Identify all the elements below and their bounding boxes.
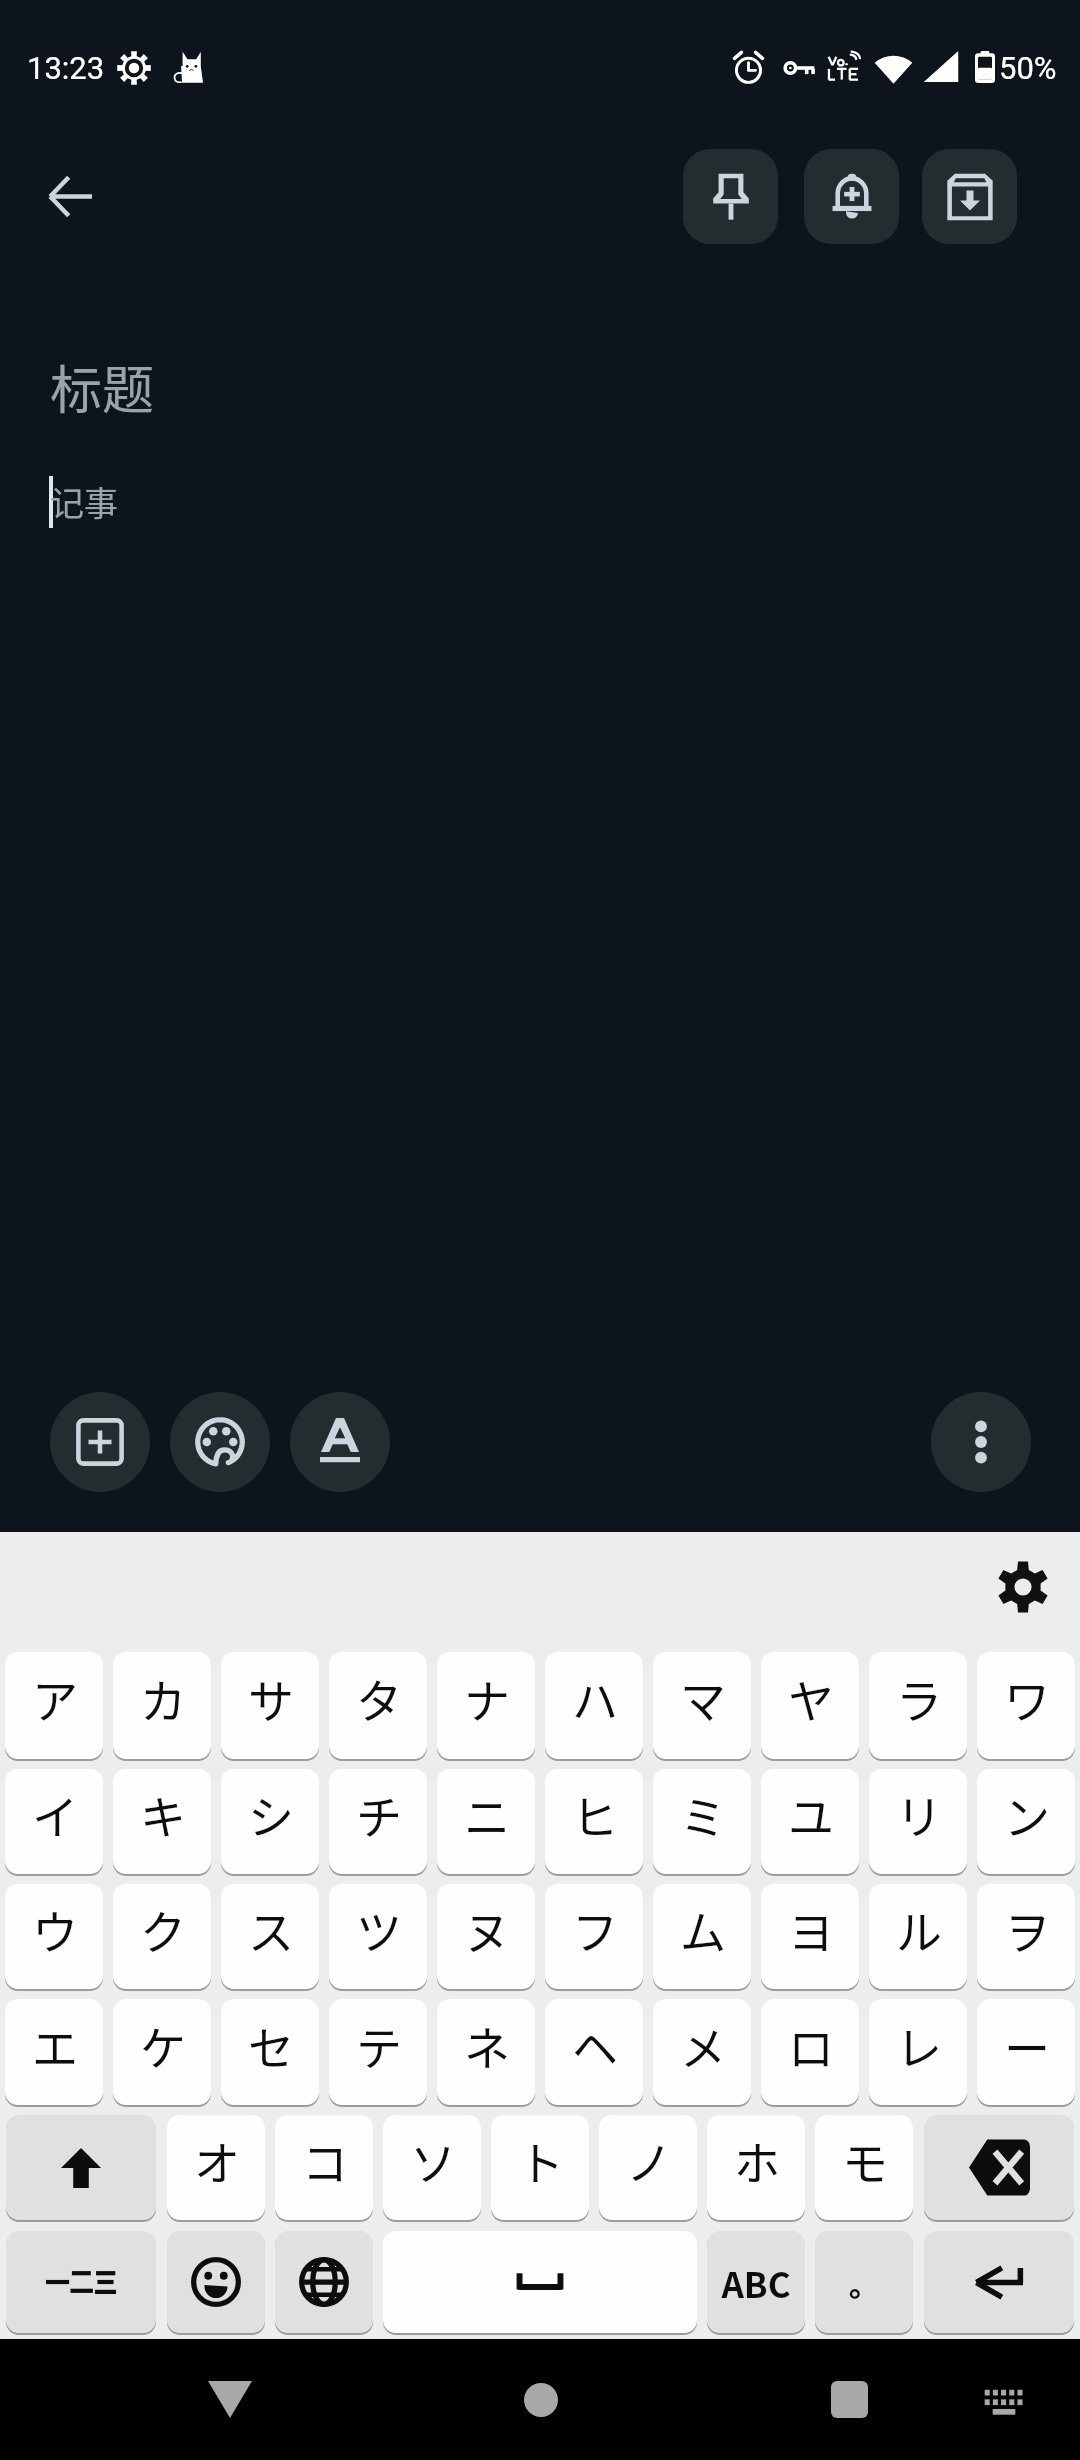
- button[interactable]: ン: [977, 1769, 1075, 1874]
- staticText: ノ: [626, 2127, 672, 2194]
- button[interactable]: Enter: [924, 2231, 1074, 2333]
- staticText: ヤ: [788, 1665, 834, 1732]
- staticText: モ: [842, 2127, 888, 2194]
- button[interactable]: マ: [653, 1652, 751, 1759]
- button[interactable]: ヒ: [545, 1769, 643, 1874]
- button[interactable]: Space: [383, 2231, 697, 2333]
- button[interactable]: オ: [167, 2115, 265, 2220]
- button[interactable]: モ: [815, 2115, 913, 2220]
- button[interactable]: ソ: [383, 2115, 481, 2220]
- button[interactable]: テ: [329, 1999, 427, 2105]
- button[interactable]: More options: [931, 1392, 1031, 1492]
- staticText: ト: [518, 2127, 564, 2194]
- button[interactable]: ア: [5, 1652, 103, 1759]
- button[interactable]: ハ: [545, 1652, 643, 1759]
- button[interactable]: ホ: [707, 2115, 805, 2220]
- button[interactable]: フ: [545, 1884, 643, 1989]
- button[interactable]: タ: [329, 1652, 427, 1759]
- staticText: イ: [32, 1781, 78, 1848]
- staticText: オ: [194, 2127, 240, 2194]
- button[interactable]: Reminder: [804, 149, 899, 244]
- staticText: ユ: [788, 1781, 834, 1848]
- button[interactable]: ヘ: [545, 1999, 643, 2105]
- staticText: サ: [248, 1665, 294, 1732]
- button[interactable]: ヌ: [437, 1884, 535, 1989]
- staticText: ミ: [680, 1781, 726, 1848]
- button[interactable]: ラ: [869, 1652, 967, 1759]
- staticText: マ: [680, 1665, 726, 1732]
- button[interactable]: ケ: [113, 1999, 211, 2105]
- button[interactable]: Format: [290, 1392, 390, 1492]
- button[interactable]: ル: [869, 1884, 967, 1989]
- staticText: ワ: [1004, 1665, 1050, 1732]
- staticText: レ: [896, 2012, 942, 2079]
- button[interactable]: Backspace: [924, 2115, 1074, 2220]
- button[interactable]: レ: [869, 1999, 967, 2105]
- staticText: ス: [248, 1896, 294, 1963]
- button[interactable]: ABC: [707, 2231, 805, 2333]
- staticText: ル: [896, 1896, 942, 1963]
- button[interactable]: 。: [815, 2231, 913, 2333]
- button[interactable]: カ: [113, 1652, 211, 1759]
- staticText: ハ: [572, 1665, 618, 1732]
- button[interactable]: Symbols: [6, 2231, 156, 2333]
- button[interactable]: ニ: [437, 1769, 535, 1874]
- button[interactable]: Back: [175, 2339, 285, 2460]
- button[interactable]: ヲ: [977, 1884, 1075, 1989]
- button[interactable]: Home: [486, 2339, 596, 2460]
- staticText: ネ: [464, 2012, 510, 2079]
- button[interactable]: ナ: [437, 1652, 535, 1759]
- button[interactable]: コ: [275, 2115, 373, 2220]
- button[interactable]: 标题: [46, 330, 1036, 426]
- staticText: ヌ: [464, 1896, 510, 1963]
- button[interactable]: ユ: [761, 1769, 859, 1874]
- button[interactable]: Add: [50, 1392, 150, 1492]
- button[interactable]: ク: [113, 1884, 211, 1989]
- button[interactable]: ワ: [977, 1652, 1075, 1759]
- button[interactable]: リ: [869, 1769, 967, 1874]
- button[interactable]: Pin: [683, 149, 778, 244]
- button[interactable]: ロ: [761, 1999, 859, 2105]
- button[interactable]: ウ: [5, 1884, 103, 1989]
- button[interactable]: キ: [113, 1769, 211, 1874]
- staticText: ABC: [721, 2257, 791, 2308]
- button[interactable]: イ: [5, 1769, 103, 1874]
- button[interactable]: ヨ: [761, 1884, 859, 1989]
- button[interactable]: ミ: [653, 1769, 751, 1874]
- button[interactable]: Emoji: [167, 2231, 265, 2333]
- staticText: 50%: [999, 50, 1057, 86]
- button[interactable]: Archive: [922, 149, 1017, 244]
- button[interactable]: 记事: [46, 462, 1036, 1362]
- button[interactable]: Keyboard settings: [987, 1551, 1059, 1623]
- staticText: ツ: [356, 1896, 402, 1963]
- button[interactable]: チ: [329, 1769, 427, 1874]
- button[interactable]: Colour: [170, 1392, 270, 1492]
- button[interactable]: エ: [5, 1999, 103, 2105]
- staticText: ク: [140, 1896, 186, 1963]
- staticText: ー: [1004, 2012, 1050, 2079]
- button[interactable]: シ: [221, 1769, 319, 1874]
- button[interactable]: ト: [491, 2115, 589, 2220]
- staticText: チ: [356, 1781, 402, 1848]
- button[interactable]: サ: [221, 1652, 319, 1759]
- button[interactable]: Shift: [6, 2115, 156, 2220]
- button[interactable]: セ: [221, 1999, 319, 2105]
- button[interactable]: ノ: [599, 2115, 697, 2220]
- staticText: ヒ: [572, 1781, 618, 1848]
- button[interactable]: メ: [653, 1999, 751, 2105]
- button[interactable]: Back: [22, 148, 118, 244]
- button[interactable]: ス: [221, 1884, 319, 1989]
- button[interactable]: Language: [275, 2231, 373, 2333]
- staticText: 记事: [50, 477, 118, 526]
- button[interactable]: Recents: [794, 2339, 904, 2460]
- button[interactable]: Switch keyboard: [949, 2339, 1059, 2460]
- button[interactable]: ネ: [437, 1999, 535, 2105]
- staticText: メ: [680, 2012, 726, 2079]
- button[interactable]: ツ: [329, 1884, 427, 1989]
- button[interactable]: ム: [653, 1884, 751, 1989]
- staticText: ケ: [140, 2012, 186, 2079]
- button[interactable]: ヤ: [761, 1652, 859, 1759]
- staticText: ヘ: [572, 2012, 618, 2079]
- staticText: ニ: [464, 1781, 510, 1848]
- button[interactable]: ー: [977, 1999, 1075, 2105]
